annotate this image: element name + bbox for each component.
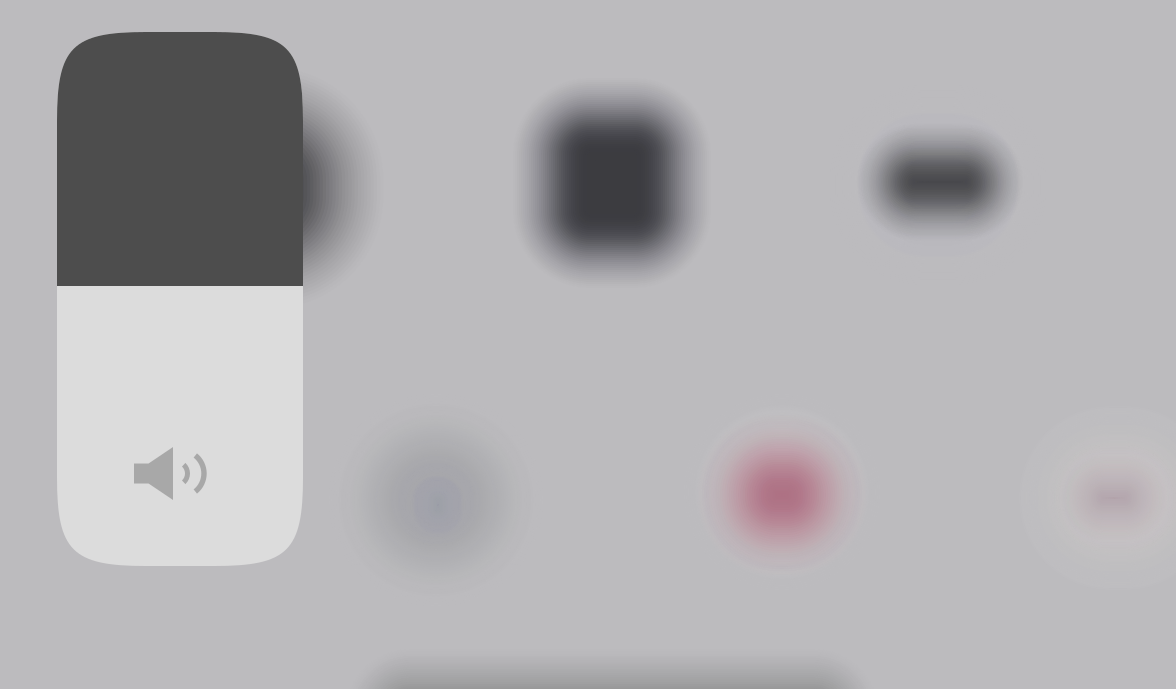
button[interactable]: Volume <box>57 32 303 566</box>
